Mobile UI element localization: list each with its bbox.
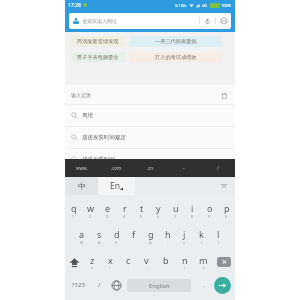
button[interactable]: 搜索或输入网址 bbox=[69, 13, 231, 29]
staticText: 0 bbox=[225, 214, 228, 218]
staticText: a bbox=[79, 228, 85, 240]
button[interactable]: d bbox=[108, 228, 125, 244]
button[interactable]: Clear history bbox=[219, 90, 229, 100]
button[interactable]: r bbox=[116, 202, 133, 218]
staticText: ' bbox=[128, 266, 129, 270]
button[interactable]: 输入记录 bbox=[65, 85, 235, 104]
button[interactable]: s bbox=[91, 228, 108, 244]
button[interactable]: y bbox=[150, 202, 167, 218]
staticText: 周润发新音绿发现 bbox=[77, 38, 119, 45]
staticText: y bbox=[156, 202, 161, 214]
button[interactable]: e bbox=[99, 202, 116, 218]
button[interactable]: m bbox=[194, 254, 213, 270]
staticText: r bbox=[123, 202, 127, 214]
staticText: 8 bbox=[191, 214, 194, 218]
button[interactable]: Voice search bbox=[200, 13, 215, 29]
button[interactable]: Delete bbox=[213, 254, 235, 270]
button[interactable]: z bbox=[83, 254, 101, 270]
button[interactable]: . bbox=[199, 275, 209, 295]
button[interactable]: w bbox=[82, 202, 99, 218]
button[interactable]: 周润发新音绿发现 bbox=[71, 36, 125, 47]
staticText: www. bbox=[76, 165, 88, 171]
button[interactable]: ?123 bbox=[65, 275, 91, 295]
button[interactable]: t bbox=[133, 202, 150, 218]
staticText: o bbox=[207, 202, 213, 214]
staticText: 一美三代彻底爱搞 bbox=[155, 38, 197, 45]
button[interactable]: / bbox=[91, 275, 107, 295]
staticText: z bbox=[90, 254, 95, 266]
button[interactable]: b bbox=[156, 254, 175, 270]
staticText: ) bbox=[218, 240, 220, 244]
button[interactable]: .com bbox=[99, 159, 133, 177]
button[interactable]: 中 bbox=[65, 177, 98, 195]
button[interactable]: n bbox=[175, 254, 194, 270]
button[interactable]: h bbox=[159, 228, 176, 244]
staticText: .cn bbox=[147, 165, 154, 171]
button[interactable]: Hide keyboard bbox=[213, 177, 235, 195]
staticText: ? bbox=[203, 266, 205, 270]
staticText: " bbox=[109, 266, 111, 270]
staticText: 打入的考试成绩效 bbox=[155, 54, 197, 61]
button[interactable]: www. bbox=[65, 159, 99, 177]
staticText: n bbox=[182, 254, 188, 266]
staticText: g bbox=[148, 228, 154, 240]
staticText: t bbox=[140, 202, 144, 214]
button[interactable]: a bbox=[73, 228, 91, 244]
staticText: - bbox=[167, 240, 169, 244]
staticText: p bbox=[224, 202, 230, 214]
button[interactable]: .cn bbox=[133, 159, 167, 177]
button[interactable]: c bbox=[119, 254, 137, 270]
staticText: 男子手表电脑要会 bbox=[77, 54, 119, 61]
button[interactable]: p bbox=[218, 202, 235, 218]
staticText: 9 bbox=[208, 214, 211, 218]
staticText: : bbox=[146, 266, 147, 270]
button[interactable]: f bbox=[125, 228, 142, 244]
staticText: - bbox=[183, 165, 185, 171]
button[interactable]: En bbox=[98, 177, 135, 195]
button[interactable]: q bbox=[65, 202, 82, 218]
staticText: 2 bbox=[89, 214, 92, 218]
button[interactable]: i bbox=[184, 202, 201, 218]
staticText: 4G bbox=[202, 3, 208, 8]
button[interactable]: 一美三代彻底爱搞 bbox=[130, 36, 222, 47]
staticText: c bbox=[126, 254, 131, 266]
button[interactable]: l bbox=[210, 228, 227, 244]
button[interactable]: 男子手表电脑要会 bbox=[71, 52, 125, 63]
staticText: # bbox=[98, 240, 101, 244]
staticText: 100% bbox=[221, 3, 232, 8]
button[interactable]: 描述发誓时间规定 bbox=[65, 127, 235, 148]
button[interactable]: v bbox=[137, 254, 156, 270]
staticText: k bbox=[199, 228, 204, 240]
button[interactable]: k bbox=[193, 228, 210, 244]
staticText: ! bbox=[184, 266, 185, 270]
staticText: l bbox=[217, 228, 220, 240]
button[interactable]: Go bbox=[209, 275, 235, 295]
button[interactable]: 描述发誓时间 bbox=[65, 149, 235, 170]
staticText: s bbox=[97, 228, 102, 240]
button[interactable]: j bbox=[176, 228, 193, 244]
button[interactable]: / bbox=[201, 159, 235, 177]
staticText: w bbox=[87, 202, 95, 214]
button[interactable]: o bbox=[201, 202, 218, 218]
staticText: 搜索或输入网址 bbox=[82, 18, 117, 24]
button[interactable]: g bbox=[142, 228, 159, 244]
button[interactable]: Change language bbox=[107, 275, 125, 295]
staticText: / bbox=[98, 281, 101, 289]
staticText: 4 bbox=[123, 214, 126, 218]
button[interactable]: 打入的考试成绩效 bbox=[130, 52, 222, 63]
staticText: .com bbox=[111, 165, 122, 171]
staticText: . bbox=[203, 281, 205, 289]
button[interactable]: Scan QR code bbox=[216, 13, 231, 29]
button[interactable]: Shift bbox=[65, 254, 83, 270]
button[interactable]: x bbox=[101, 254, 119, 270]
button[interactable]: English bbox=[127, 279, 191, 292]
staticText: & bbox=[149, 240, 152, 244]
button[interactable]: u bbox=[167, 202, 184, 218]
button[interactable]: 周培 bbox=[65, 105, 235, 126]
staticText: 描述发誓时间 bbox=[82, 156, 115, 163]
staticText: En bbox=[110, 180, 120, 192]
staticText: 5 bbox=[140, 214, 143, 218]
staticText: + bbox=[183, 240, 186, 244]
